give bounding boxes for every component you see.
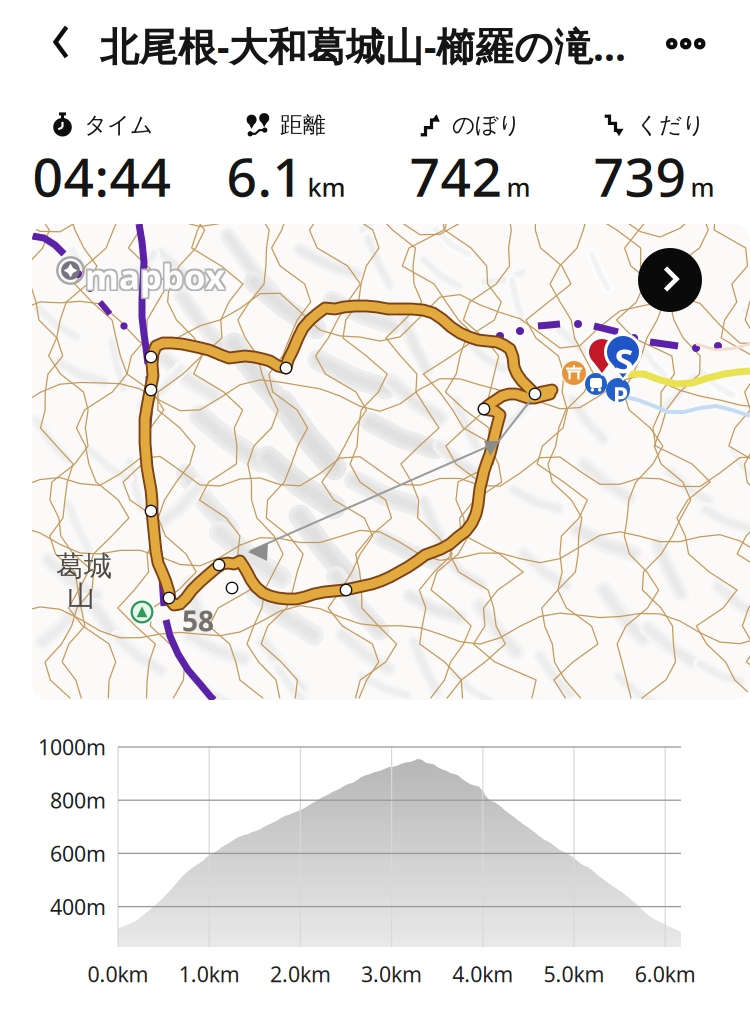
staticText: 山 — [67, 579, 95, 613]
staticText: 2.0km — [270, 960, 331, 988]
staticText: 800m — [50, 786, 106, 814]
staticText: P — [612, 378, 628, 412]
staticText: m — [690, 170, 714, 204]
staticText: mapbox — [83, 253, 223, 299]
button[interactable]: More options — [650, 14, 722, 74]
staticText: くだり — [636, 111, 705, 139]
staticText: 04:44 — [32, 141, 171, 211]
staticText: mapbox — [85, 253, 225, 299]
staticText: mapbox — [87, 255, 227, 301]
staticText: 距離 — [280, 111, 326, 139]
staticText: m — [506, 170, 530, 204]
staticText: km — [307, 170, 345, 204]
staticText: 3.0km — [361, 960, 422, 988]
button[interactable]: Route map — [32, 224, 750, 700]
staticText: S — [614, 337, 633, 383]
staticText: mapbox — [85, 255, 225, 301]
staticText: 600m — [50, 839, 106, 867]
staticText: 4.0km — [452, 960, 513, 988]
staticText: 58 — [182, 602, 214, 639]
staticText: 5.0km — [543, 960, 604, 988]
staticText: のぼり — [452, 111, 521, 139]
staticText: 6.0km — [635, 960, 696, 988]
staticText: 6.1 — [226, 141, 303, 211]
staticText: mapbox — [85, 251, 225, 297]
staticText: mapbox — [83, 255, 223, 301]
staticText: 400m — [50, 892, 106, 921]
staticText: 葛城 — [56, 549, 112, 583]
staticText: 0.0km — [87, 960, 148, 988]
staticText: 742 — [409, 141, 502, 211]
staticText: mapbox — [87, 253, 227, 299]
staticText: 北尾根‑大和葛城山‑櫛羅の滝… — [100, 20, 626, 72]
staticText: mapbox — [83, 251, 223, 297]
staticText: mapbox — [87, 251, 227, 297]
staticText: 1.0km — [179, 960, 240, 988]
staticText: 739 — [593, 141, 686, 211]
staticText: 1000m — [38, 733, 106, 761]
button[interactable]: Back — [33, 10, 89, 74]
staticText: タイム — [84, 111, 153, 139]
button[interactable]: Expand map — [638, 248, 702, 312]
